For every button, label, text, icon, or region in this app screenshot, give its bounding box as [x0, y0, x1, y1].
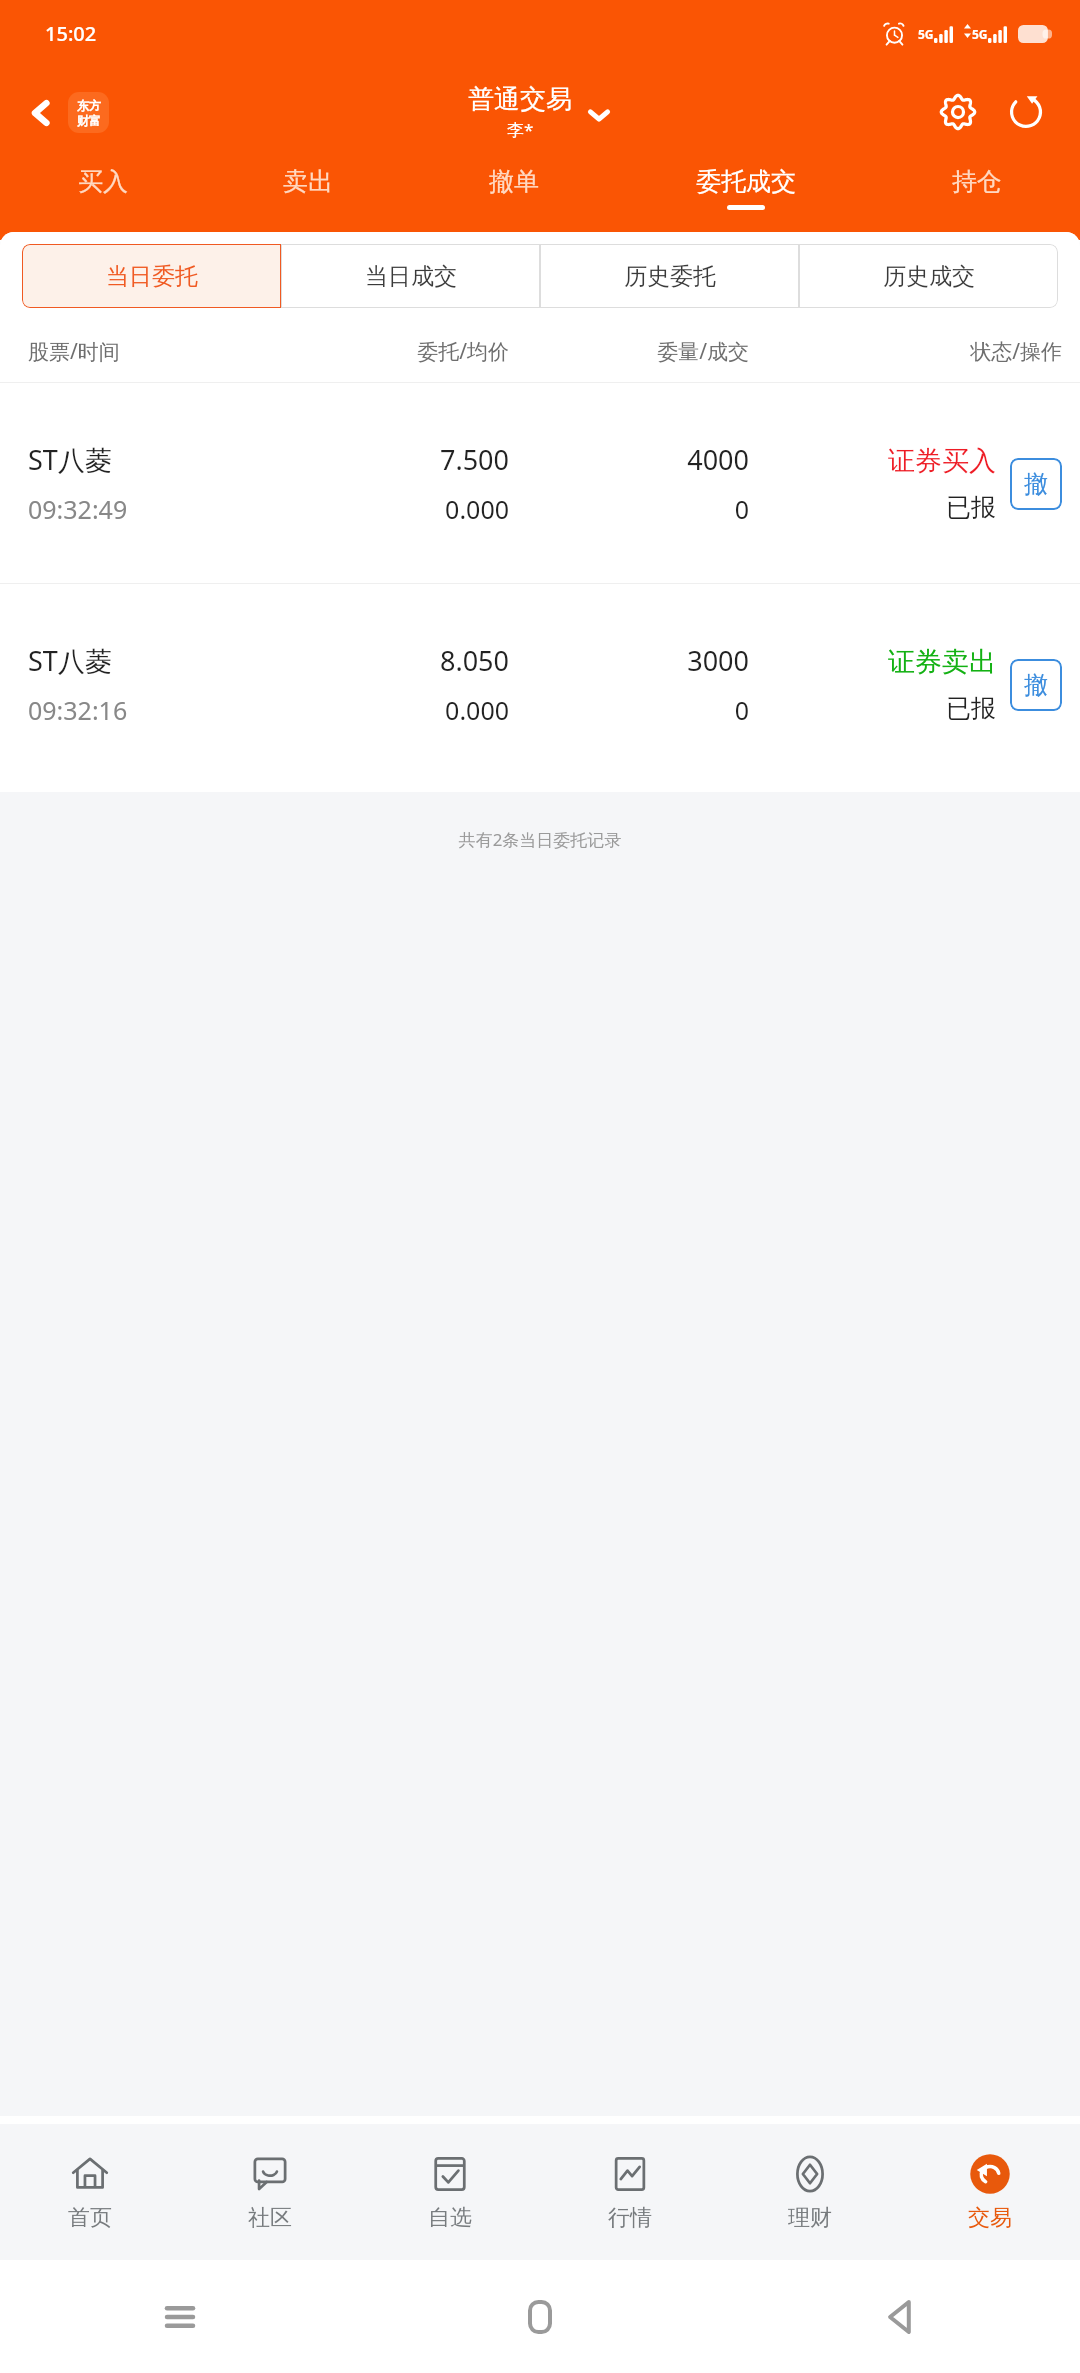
staticText: 东方 [77, 98, 101, 113]
staticText: 0 [734, 492, 749, 526]
staticText: ST八菱 [28, 441, 112, 478]
button[interactable]: Back [870, 2287, 930, 2347]
button[interactable]: 自选 [360, 2124, 540, 2260]
button[interactable]: 社区 [180, 2124, 360, 2260]
staticText: 交易 [968, 2204, 1012, 2232]
button[interactable]: 当日成交 [281, 244, 540, 308]
staticText: 4000 [687, 441, 749, 478]
button[interactable]: 持仓 [874, 158, 1080, 234]
staticText: 委托/均价 [269, 337, 509, 366]
staticText: 股票/时间 [28, 337, 269, 366]
staticText: 共有2条当日委托记录 [0, 828, 1080, 851]
staticText: 行情 [608, 2204, 652, 2232]
staticText: 8.050 [439, 642, 509, 679]
button[interactable]: 历史成交 [799, 244, 1058, 308]
staticText: 状态/操作 [749, 337, 1062, 366]
staticText: 财富 [77, 113, 101, 128]
staticText: 持仓 [952, 166, 1002, 197]
staticText: 首页 [68, 2204, 112, 2232]
button[interactable]: 当日委托 [22, 244, 281, 308]
button[interactable]: Settings [930, 84, 986, 140]
staticText: 普通交易 [468, 83, 572, 116]
staticText: 15:02 [45, 20, 97, 47]
staticText: 历史委托 [624, 262, 716, 291]
staticText: 买入 [78, 166, 128, 197]
staticText: 5G [918, 26, 934, 42]
button[interactable]: 历史委托 [540, 244, 799, 308]
staticText: 理财 [788, 2204, 832, 2232]
button[interactable]: 撤 [1010, 659, 1062, 711]
staticText: 已报 [946, 492, 996, 523]
staticText: 09:32:16 [28, 693, 128, 727]
button[interactable]: Home [510, 2287, 570, 2347]
staticText: 0.000 [445, 693, 509, 727]
button[interactable]: 撤 [1010, 458, 1062, 510]
button[interactable]: 首页 [0, 2124, 180, 2260]
staticText: 历史成交 [883, 262, 975, 291]
staticText: 自选 [428, 2204, 472, 2232]
button[interactable]: Back [20, 86, 115, 139]
staticText: 委托成交 [696, 166, 796, 197]
button[interactable]: Recents [150, 2287, 210, 2347]
staticText: 证券卖出 [888, 645, 996, 679]
staticText: 09:32:49 [28, 492, 128, 526]
button[interactable]: Refresh [998, 84, 1054, 140]
staticText: 撤 [1024, 670, 1048, 700]
staticText: 证券买入 [888, 444, 996, 478]
staticText: 7.500 [439, 441, 509, 478]
button[interactable]: 撤单 [411, 158, 617, 234]
staticText: 撤单 [489, 166, 539, 197]
staticText: 当日委托 [106, 262, 198, 291]
staticText: 5G [972, 26, 988, 42]
button[interactable]: ST八菱 [0, 584, 1080, 784]
button[interactable]: 买入 [0, 158, 205, 234]
button[interactable]: 行情 [540, 2124, 720, 2260]
staticText: 0 [734, 693, 749, 727]
button[interactable]: 卖出 [205, 158, 411, 234]
button[interactable]: 理财 [720, 2124, 900, 2260]
staticText: 卖出 [283, 166, 333, 197]
staticText: 撤 [1024, 469, 1048, 499]
staticText: 0.000 [445, 492, 509, 526]
button[interactable]: 委托成交 [617, 158, 874, 234]
staticText: 已报 [946, 693, 996, 724]
staticText: 李* [507, 118, 534, 141]
staticText: 当日成交 [365, 262, 457, 291]
staticText: 委量/成交 [509, 337, 749, 366]
staticText: ST八菱 [28, 642, 112, 679]
staticText: 3000 [687, 642, 749, 679]
button[interactable]: ST八菱 [0, 383, 1080, 583]
button[interactable]: 交易 [900, 2124, 1080, 2260]
staticText: 社区 [248, 2204, 292, 2232]
button[interactable]: 普通交易 [468, 83, 612, 141]
